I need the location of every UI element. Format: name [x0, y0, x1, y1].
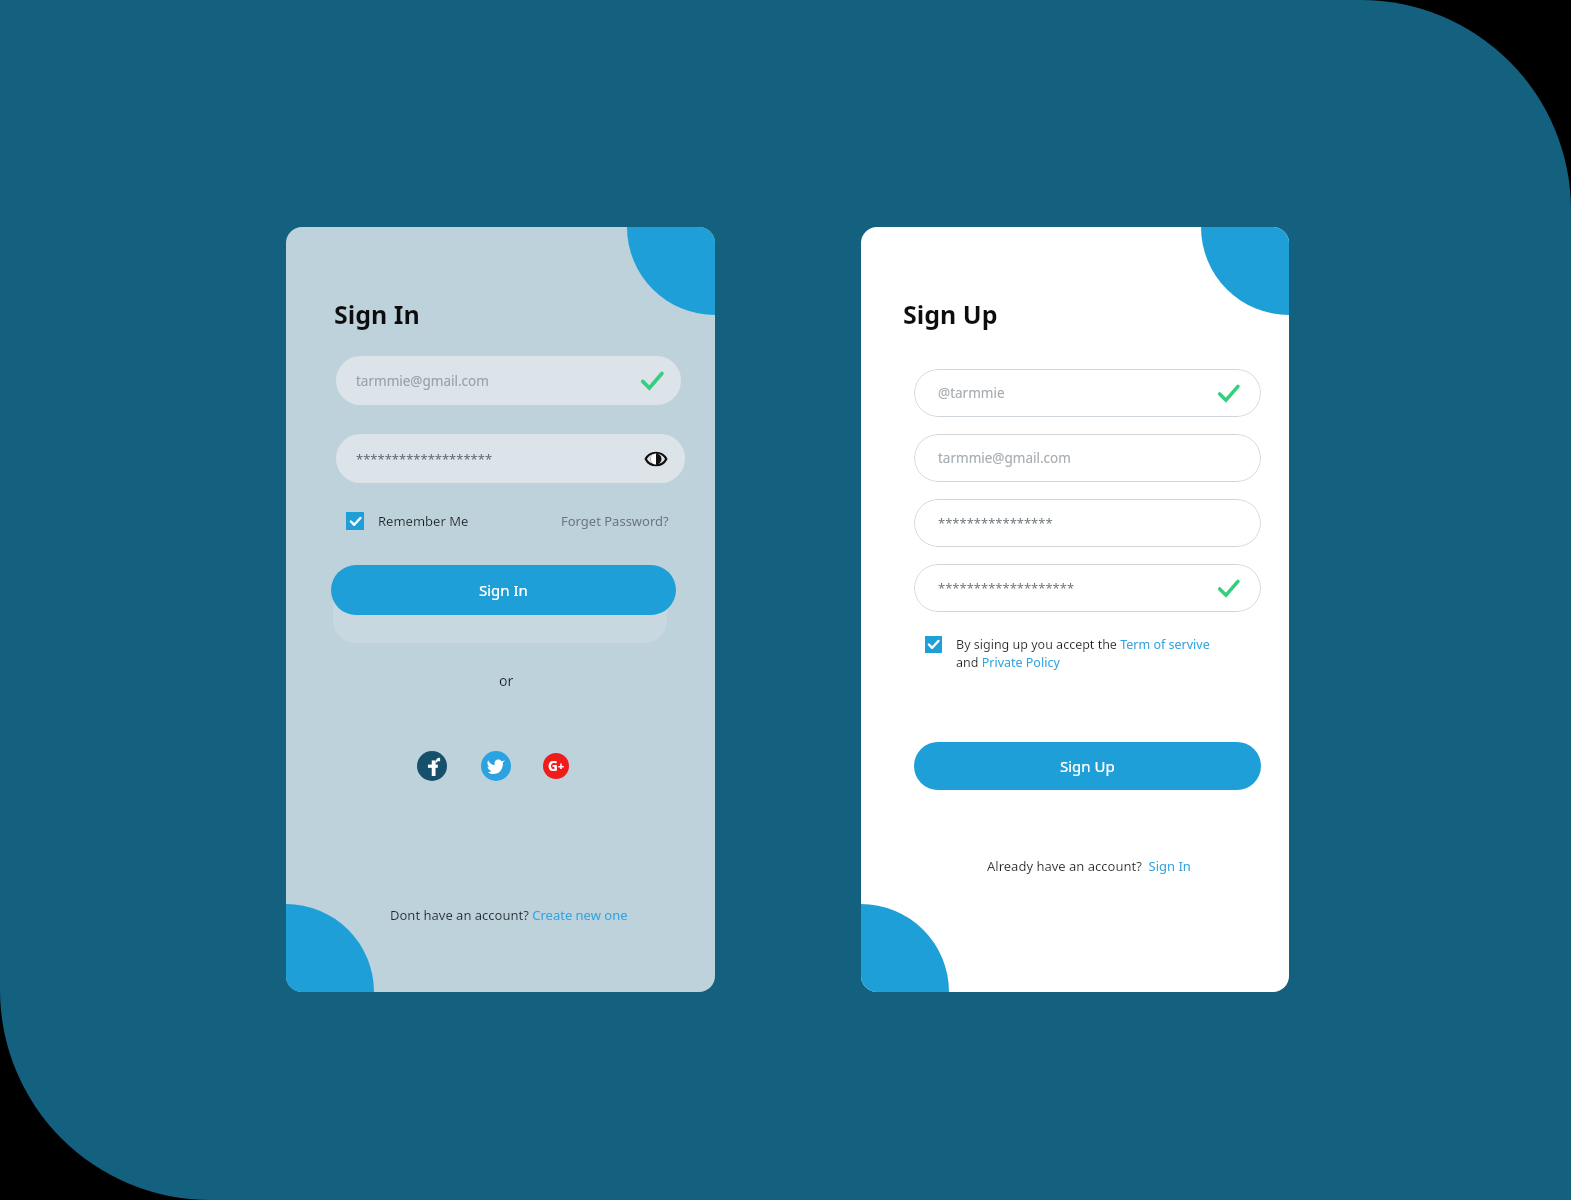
- staticText: Dont have an account? Create new one: [390, 906, 628, 924]
- button[interactable]: *******************: [914, 564, 1261, 612]
- staticText: or: [499, 671, 514, 690]
- button[interactable]: Sign in with Google Plus: [543, 753, 569, 779]
- button[interactable]: tarmmie@gmail.com: [336, 356, 681, 405]
- button[interactable]: *******************: [336, 434, 685, 483]
- button[interactable]: Already have an account? Sign In: [987, 857, 1191, 875]
- button[interactable]: @tarmmie: [914, 369, 1261, 417]
- button[interactable]: Sign in with Facebook: [417, 751, 447, 781]
- staticText: *******************: [356, 450, 493, 468]
- other: Checkbox: [346, 512, 364, 530]
- staticText: G: [548, 757, 558, 775]
- staticText: Sign Up: [1060, 756, 1115, 776]
- button[interactable]: Checkbox: [925, 636, 1210, 671]
- staticText: Sign Up: [903, 297, 998, 331]
- staticText: Sign In: [479, 580, 528, 600]
- staticText: tarmmie@gmail.com: [356, 372, 489, 390]
- button[interactable]: ****************: [914, 499, 1261, 547]
- button[interactable]: Toggle password visibility: [645, 448, 667, 470]
- staticText: ****************: [938, 514, 1053, 532]
- other: Checkbox: [925, 636, 942, 653]
- staticText: *******************: [938, 579, 1075, 597]
- staticText: Forget Password?: [561, 512, 669, 530]
- staticText: Already have an account? Sign In: [987, 857, 1191, 875]
- button[interactable]: Sign In: [331, 565, 676, 615]
- staticText: Remember Me: [378, 512, 469, 530]
- staticText: +: [558, 759, 564, 773]
- staticText: and Private Policy: [956, 654, 1060, 671]
- staticText: By siging up you accept the Term of serv…: [956, 636, 1210, 653]
- staticText: @tarmmie: [938, 384, 1005, 402]
- button[interactable]: Sign Up: [914, 742, 1261, 790]
- staticText: tarmmie@gmail.com: [938, 449, 1071, 467]
- button[interactable]: Dont have an account? Create new one: [390, 906, 628, 924]
- button[interactable]: Sign in with Twitter: [481, 751, 511, 781]
- button[interactable]: tarmmie@gmail.com: [914, 434, 1261, 482]
- button[interactable]: Forget Password?: [561, 512, 669, 530]
- staticText: Sign In: [334, 297, 420, 331]
- button[interactable]: Checkbox: [346, 512, 469, 530]
